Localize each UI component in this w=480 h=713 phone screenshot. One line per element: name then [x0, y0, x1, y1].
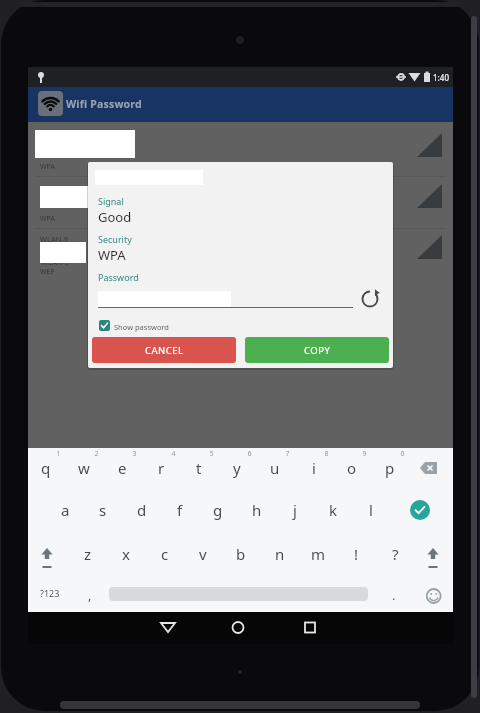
button[interactable]: l — [354, 491, 388, 529]
staticText: s — [99, 500, 107, 520]
staticText: y — [233, 458, 241, 478]
staticText: 7 — [285, 449, 290, 459]
staticText: r — [158, 458, 165, 478]
button[interactable]: h — [240, 491, 274, 529]
staticText: j — [293, 500, 297, 520]
staticText: l — [369, 500, 373, 520]
staticText: 4 — [171, 449, 176, 459]
staticText: d — [137, 500, 147, 520]
button[interactable]: q — [29, 449, 63, 487]
staticText: g — [213, 500, 223, 520]
staticText: u — [270, 458, 280, 478]
button[interactable]: ? — [378, 535, 412, 573]
button[interactable]: t — [182, 449, 216, 487]
button[interactable]: ?123 — [33, 574, 67, 612]
staticText: 3 — [132, 449, 137, 459]
staticText: 1 — [56, 449, 61, 459]
staticText: WLAN-9 — [40, 234, 69, 244]
staticText: ?123 — [40, 587, 60, 599]
button[interactable]: n — [263, 535, 297, 573]
button[interactable]: i — [297, 449, 331, 487]
button[interactable]: d — [125, 491, 159, 529]
staticText: k — [329, 500, 338, 520]
staticText: h — [252, 500, 262, 520]
staticText: WEP — [40, 267, 55, 277]
button[interactable]: g — [201, 491, 235, 529]
staticText: WPA — [40, 214, 55, 224]
button[interactable] — [222, 612, 254, 644]
staticText: Good — [98, 208, 132, 226]
staticText: WPA — [40, 162, 55, 172]
staticText: t — [196, 458, 202, 478]
button[interactable] — [294, 612, 326, 644]
button[interactable] — [358, 287, 382, 311]
staticText: p — [385, 458, 395, 478]
button[interactable]: y — [220, 449, 254, 487]
staticText: Password — [98, 271, 139, 283]
staticText: x — [122, 544, 130, 564]
staticText: f — [177, 500, 183, 520]
button[interactable]: x — [109, 535, 143, 573]
button[interactable]: r — [144, 449, 178, 487]
button[interactable]: e — [105, 449, 139, 487]
button[interactable]: CANCEL — [92, 337, 236, 363]
button[interactable]: COPY — [245, 337, 389, 363]
staticText: Wifi Password — [66, 97, 142, 111]
button[interactable]: p — [373, 449, 407, 487]
staticText: Signal — [98, 195, 124, 207]
staticText: e — [118, 458, 127, 478]
staticText: 5 — [209, 449, 214, 459]
staticText: z — [84, 544, 92, 564]
staticText: 1:40 — [433, 72, 449, 83]
staticText: n — [275, 544, 285, 564]
staticText: a — [61, 500, 70, 520]
staticText: . — [392, 586, 396, 604]
button[interactable]: o — [335, 449, 369, 487]
staticText: o — [347, 458, 357, 478]
staticText: ! — [354, 544, 359, 564]
button[interactable]: b — [224, 535, 258, 573]
staticText: CANCEL — [145, 344, 184, 357]
staticText: c — [161, 544, 169, 564]
staticText: 6 — [247, 449, 252, 459]
button[interactable]: a — [48, 491, 82, 529]
staticText: v — [199, 544, 207, 564]
staticText: 0 — [400, 449, 405, 459]
staticText: 2 — [94, 449, 99, 459]
button[interactable] — [410, 500, 430, 520]
staticText: 8 — [324, 449, 329, 459]
staticText: WPA — [98, 246, 126, 264]
staticText: i — [312, 458, 316, 478]
button[interactable] — [40, 186, 88, 208]
staticText: 9 — [362, 449, 367, 459]
staticText: Show password — [114, 322, 169, 332]
button[interactable]: w — [67, 449, 101, 487]
staticText: , — [88, 586, 92, 604]
button[interactable]: ! — [339, 535, 373, 573]
button[interactable]: . — [377, 576, 411, 614]
button[interactable]: u — [258, 449, 292, 487]
button[interactable] — [152, 612, 184, 644]
button[interactable]: c — [148, 535, 182, 573]
staticText: b — [236, 544, 246, 564]
button[interactable]: m — [301, 535, 335, 573]
staticText: w — [78, 458, 90, 478]
button[interactable]: f — [163, 491, 197, 529]
button[interactable]: z — [71, 535, 105, 573]
staticText: q — [41, 458, 51, 478]
button[interactable]: v — [186, 535, 220, 573]
button[interactable]: j — [278, 491, 312, 529]
staticText: WLAN-9 — [41, 257, 70, 267]
button[interactable]: s — [86, 491, 120, 529]
button[interactable]: , — [73, 576, 107, 614]
staticText: Security — [98, 233, 132, 245]
button[interactable]: Show password — [96, 317, 216, 335]
staticText: ? — [392, 544, 399, 564]
staticText: m — [311, 544, 326, 564]
button[interactable]: k — [316, 491, 350, 529]
staticText: COPY — [304, 344, 331, 357]
